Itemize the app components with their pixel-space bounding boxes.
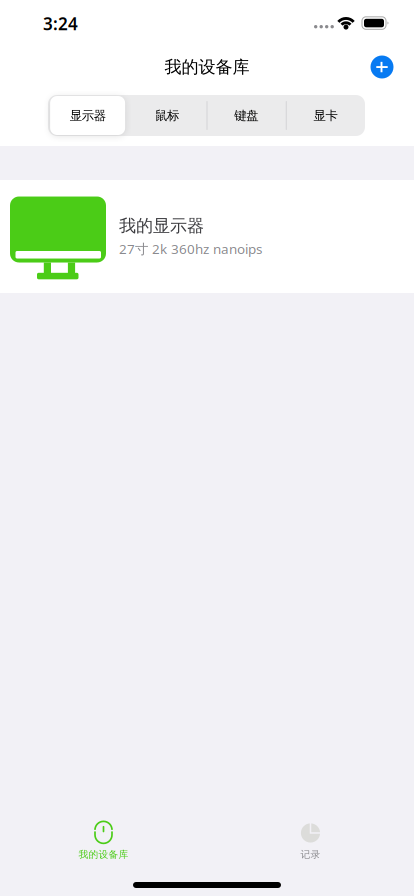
staticText: 显示器 bbox=[70, 108, 106, 123]
button[interactable]: 显示器 bbox=[48, 95, 127, 136]
staticText: 我的设备库 bbox=[164, 56, 249, 78]
button[interactable]: 记录 bbox=[207, 816, 414, 865]
button[interactable]: 我的设备库 bbox=[0, 816, 207, 865]
staticText: 显卡 bbox=[313, 108, 337, 123]
button[interactable]: Add device bbox=[360, 47, 404, 87]
staticText: 27寸 2k 360hz nanoips bbox=[119, 240, 262, 258]
staticText: 记录 bbox=[300, 848, 320, 861]
staticText: 3:24 bbox=[43, 12, 78, 35]
button[interactable]: 键盘 bbox=[206, 95, 286, 136]
staticText: 我的设备库 bbox=[78, 848, 128, 861]
button[interactable]: 鼠标 bbox=[127, 95, 206, 136]
button[interactable]: 我的显示器 bbox=[0, 180, 414, 293]
staticText: 鼠标 bbox=[155, 108, 179, 123]
button[interactable]: 显卡 bbox=[286, 95, 365, 136]
staticText: 键盘 bbox=[234, 108, 258, 123]
staticText: 我的显示器 bbox=[119, 215, 204, 237]
